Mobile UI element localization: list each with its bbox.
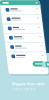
staticText: Bigger fun with bbox=[12, 81, 45, 86]
button[interactable] bbox=[0, 0, 49, 100]
button[interactable] bbox=[0, 0, 49, 100]
button[interactable]: Start chat bbox=[0, 0, 49, 100]
button[interactable] bbox=[0, 0, 49, 100]
button[interactable]: Chats bbox=[0, 0, 49, 100]
staticText: a whole new chat bbox=[12, 87, 35, 91]
button[interactable] bbox=[0, 0, 49, 100]
button[interactable] bbox=[0, 0, 49, 100]
button[interactable] bbox=[0, 0, 49, 100]
button[interactable]: New message bbox=[0, 0, 49, 100]
